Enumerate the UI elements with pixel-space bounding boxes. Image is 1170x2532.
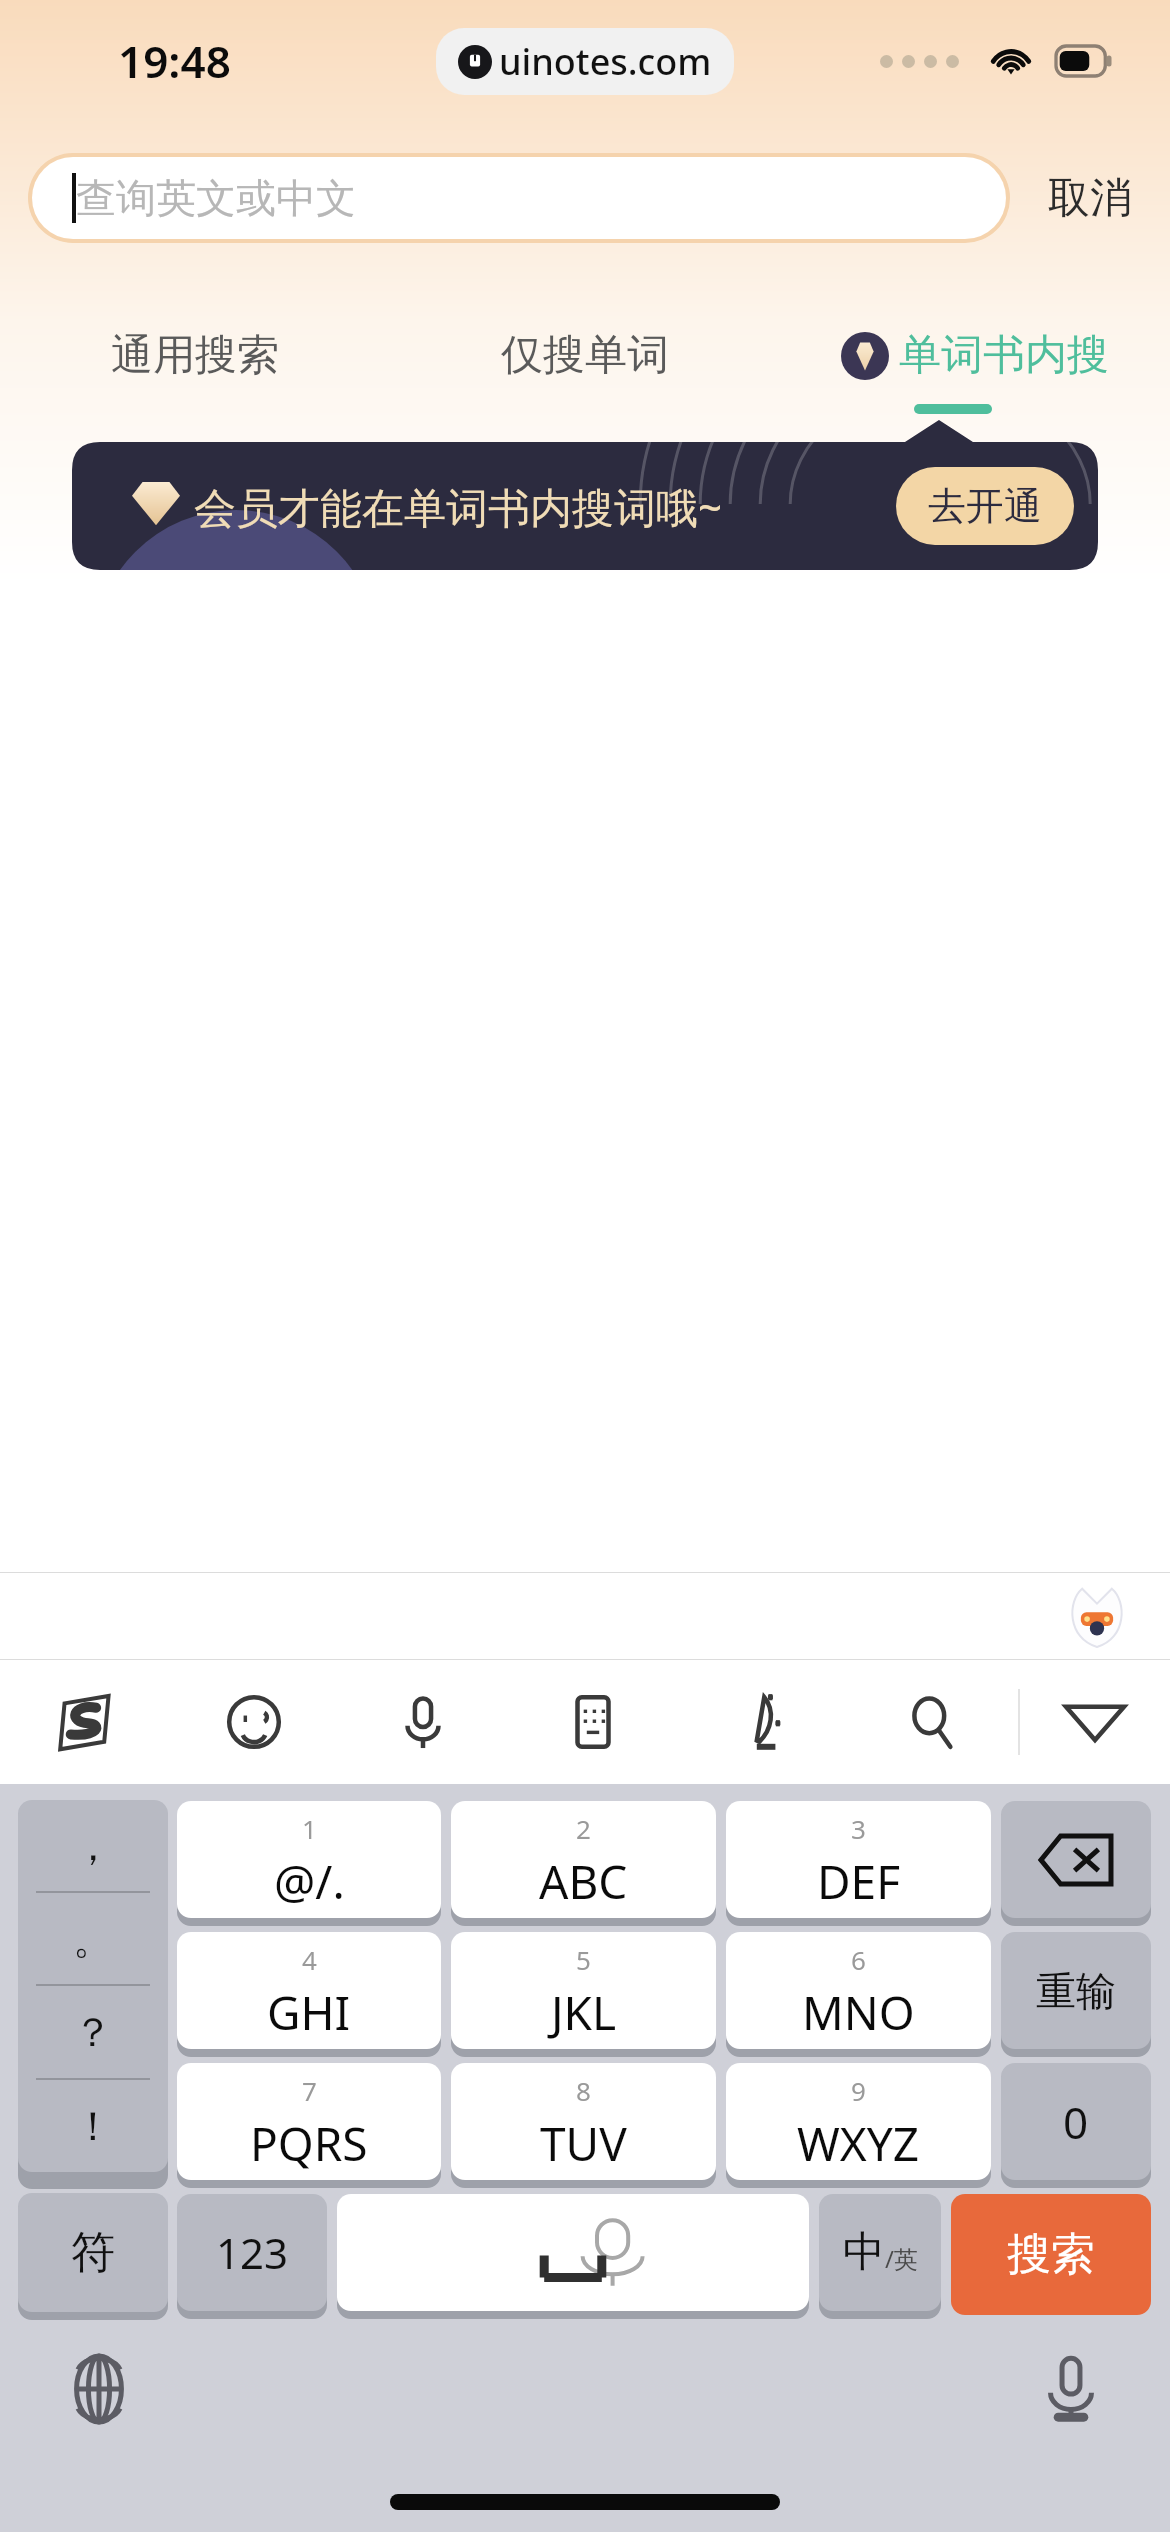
- staticText: 通用搜索: [111, 329, 279, 382]
- staticText: 1: [302, 1811, 317, 1846]
- staticText: 搜索: [1007, 2227, 1095, 2282]
- staticText: ABC: [539, 1850, 628, 1913]
- button[interactable]: Voice input: [338, 1660, 508, 1784]
- staticText: 重输: [1036, 1966, 1116, 2016]
- button[interactable]: 中: [819, 2194, 941, 2311]
- staticText: TUV: [540, 2112, 627, 2175]
- staticText: MNO: [802, 1981, 915, 2044]
- button[interactable]: 搜索: [951, 2194, 1151, 2315]
- staticText: WXYZ: [797, 2112, 920, 2175]
- staticText: 3: [851, 1811, 866, 1846]
- staticText: ，: [73, 1821, 113, 1871]
- button[interactable]: 8: [451, 2063, 716, 2180]
- button[interactable]: Switch language: [58, 2348, 140, 2430]
- staticText: 6: [851, 1942, 866, 1977]
- button[interactable]: Search: [848, 1660, 1018, 1784]
- button[interactable]: 3: [726, 1801, 991, 1918]
- button[interactable]: Hide keyboard: [1020, 1660, 1170, 1784]
- staticText: 123: [216, 2224, 289, 2281]
- staticText: 19:48: [118, 31, 231, 91]
- button[interactable]: 去开通: [896, 467, 1074, 545]
- button[interactable]: 6: [726, 1932, 991, 2049]
- staticText: 查询英文或中文: [76, 173, 356, 223]
- staticText: JKL: [551, 1981, 617, 2044]
- button[interactable]: Emoji: [169, 1660, 338, 1784]
- button[interactable]: 会员才能在单词书内搜词哦~: [132, 442, 1074, 570]
- staticText: ？: [73, 2007, 113, 2057]
- other: Space: [337, 2194, 809, 2311]
- staticText: DEF: [817, 1850, 901, 1913]
- button[interactable]: 4: [177, 1932, 441, 2049]
- staticText: 符: [71, 2225, 115, 2280]
- button[interactable]: 单词书内搜: [780, 290, 1170, 420]
- button[interactable]: 查询英文或中文: [32, 157, 1006, 239]
- button[interactable]: 5: [451, 1932, 716, 2049]
- button[interactable]: Space: [337, 2194, 809, 2311]
- staticText: 4: [302, 1942, 317, 1977]
- button[interactable]: 0: [1001, 2063, 1151, 2180]
- staticText: 0: [1063, 2092, 1089, 2152]
- staticText: 2: [576, 1811, 591, 1846]
- button[interactable]: 通用搜索: [0, 290, 390, 420]
- other: Delete: [1001, 1801, 1151, 1918]
- staticText: 单词书内搜: [899, 329, 1109, 382]
- staticText: 取消: [1048, 172, 1132, 225]
- button[interactable]: 仅搜单词: [390, 290, 780, 420]
- staticText: uinotes.com: [499, 37, 712, 86]
- staticText: 去开通: [928, 482, 1042, 530]
- staticText: 9: [851, 2073, 866, 2108]
- button[interactable]: 2: [451, 1801, 716, 1918]
- button[interactable]: Voice: [1030, 2348, 1112, 2430]
- staticText: GHI: [267, 1981, 351, 2044]
- staticText: 。: [73, 1914, 113, 1964]
- staticText: 5: [576, 1942, 591, 1977]
- staticText: /英: [885, 2242, 918, 2275]
- button[interactable]: 取消: [1010, 148, 1170, 248]
- button[interactable]: Delete: [1001, 1801, 1151, 1918]
- button[interactable]: 符: [18, 2193, 168, 2312]
- button[interactable]: ，: [18, 1800, 168, 2172]
- button[interactable]: Handwriting: [678, 1660, 848, 1784]
- staticText: 仅搜单词: [501, 329, 669, 382]
- button[interactable]: 7: [177, 2063, 441, 2180]
- button[interactable]: 9: [726, 2063, 991, 2180]
- button[interactable]: 123: [177, 2194, 327, 2311]
- staticText: 中: [843, 2226, 885, 2279]
- staticText: PQRS: [250, 2112, 368, 2175]
- staticText: 8: [576, 2073, 591, 2108]
- button[interactable]: 1: [177, 1801, 441, 1918]
- button[interactable]: Sogou: [0, 1660, 169, 1784]
- staticText: 7: [302, 2073, 317, 2108]
- button[interactable]: Keyboard layout: [508, 1660, 678, 1784]
- staticText: ！: [73, 2101, 113, 2151]
- staticText: 会员才能在单词书内搜词哦~: [194, 478, 723, 535]
- button[interactable]: 重输: [1001, 1932, 1151, 2049]
- staticText: @/.: [274, 1850, 345, 1913]
